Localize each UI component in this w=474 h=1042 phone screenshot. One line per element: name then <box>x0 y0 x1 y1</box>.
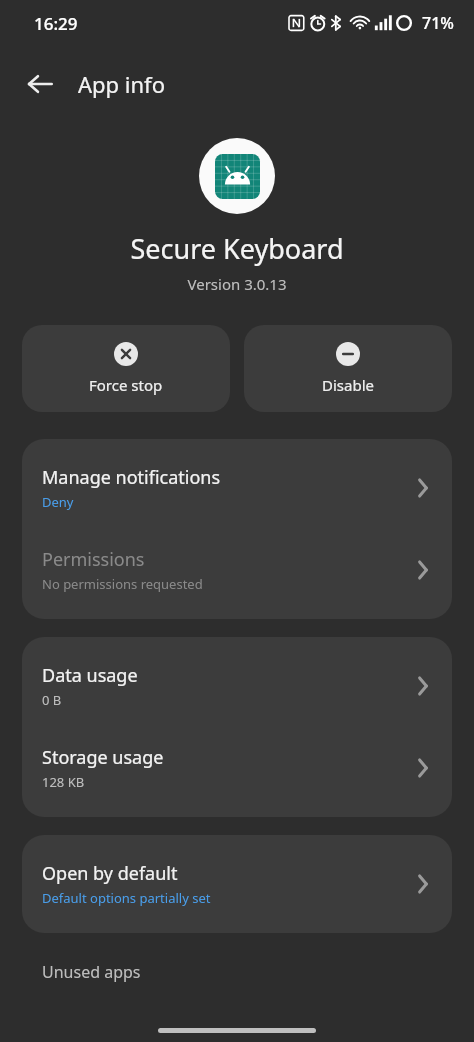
button[interactable]: Force stop <box>22 325 230 412</box>
button[interactable]: Data usage <box>22 637 452 727</box>
staticText: 128 KB <box>42 773 85 791</box>
staticText: Version 3.0.13 <box>187 274 287 294</box>
staticText: App info <box>78 69 165 99</box>
staticText: Default options partially set <box>42 889 211 907</box>
staticText: Secure Keyboard <box>130 230 344 267</box>
button[interactable]: Open by default <box>22 835 452 933</box>
staticText: Force stop <box>89 375 163 395</box>
staticText: Storage usage <box>42 745 164 770</box>
staticText: Disable <box>322 375 374 395</box>
staticText: 16:29 <box>34 12 78 35</box>
staticText: Manage notifications <box>42 465 221 490</box>
button[interactable]: Manage notifications <box>22 439 452 529</box>
staticText: Data usage <box>42 663 138 688</box>
button[interactable]: Storage usage <box>22 727 452 817</box>
staticText: Deny <box>42 493 74 511</box>
button[interactable]: Back <box>16 60 64 108</box>
staticText: Open by default <box>42 861 178 886</box>
staticText: 0 B <box>42 691 62 709</box>
staticText: 71% <box>422 12 454 34</box>
staticText: Permissions <box>42 547 145 572</box>
button[interactable]: Permissions <box>22 529 452 619</box>
staticText: Unused apps <box>42 961 141 983</box>
button[interactable]: Disable <box>244 325 452 412</box>
staticText: No permissions requested <box>42 575 203 593</box>
